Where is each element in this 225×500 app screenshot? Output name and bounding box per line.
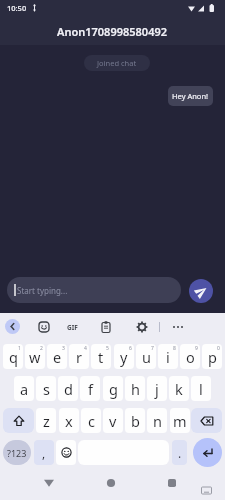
staticText: f: [88, 379, 93, 399]
button[interactable]: f: [80, 376, 100, 401]
staticText: z: [43, 411, 50, 431]
button[interactable]: k: [169, 376, 189, 401]
staticText: Anon1708998580492: [57, 24, 168, 39]
button[interactable]: q: [3, 344, 23, 369]
staticText: 2: [40, 345, 43, 352]
staticText: j: [155, 379, 159, 399]
staticText: 9: [195, 345, 198, 352]
staticText: 4: [84, 345, 87, 352]
button[interactable]: [104, 477, 118, 489]
button[interactable]: Start typing...: [7, 277, 181, 303]
button[interactable]: m: [170, 408, 190, 433]
button[interactable]: [200, 486, 213, 496]
staticText: r: [76, 347, 82, 367]
button[interactable]: o: [180, 344, 200, 369]
button[interactable]: r: [69, 344, 89, 369]
button[interactable]: [3, 408, 34, 433]
staticText: n: [153, 411, 162, 431]
button[interactable]: [189, 279, 213, 303]
button[interactable]: d: [58, 376, 78, 401]
staticText: 3: [62, 345, 65, 352]
staticText: v: [109, 411, 117, 431]
staticText: 6: [129, 345, 132, 352]
staticText: s: [43, 379, 50, 399]
button[interactable]: e: [47, 344, 67, 369]
button[interactable]: [171, 321, 185, 333]
staticText: d: [64, 379, 73, 399]
staticText: g: [109, 379, 118, 399]
staticText: l: [199, 379, 203, 399]
button[interactable]: z: [36, 408, 56, 433]
button[interactable]: t: [91, 344, 111, 369]
staticText: a: [20, 379, 29, 399]
staticText: 1: [18, 345, 21, 352]
staticText: 7: [151, 345, 154, 352]
button[interactable]: i: [158, 344, 178, 369]
button[interactable]: u: [136, 344, 156, 369]
button[interactable]: p: [202, 344, 222, 369]
button[interactable]: [191, 408, 222, 433]
button[interactable]: l: [191, 376, 211, 401]
staticText: x: [65, 411, 73, 431]
button[interactable]: [100, 321, 112, 333]
staticText: o: [186, 347, 195, 367]
staticText: h: [131, 379, 140, 399]
button[interactable]: ?123: [3, 440, 31, 465]
staticText: 10:50: [7, 3, 27, 13]
staticText: Start typing...: [17, 285, 68, 296]
staticText: .: [178, 445, 182, 461]
staticText: b: [131, 411, 140, 431]
button[interactable]: a: [14, 376, 34, 401]
button[interactable]: [38, 321, 50, 333]
button[interactable]: GIF: [64, 321, 80, 333]
staticText: u: [142, 347, 151, 367]
staticText: GIF: [67, 323, 78, 332]
button[interactable]: c: [81, 408, 101, 433]
button[interactable]: s: [36, 376, 56, 401]
staticText: 8: [173, 345, 176, 352]
staticText: q: [9, 347, 18, 367]
button[interactable]: b: [125, 408, 145, 433]
staticText: m: [173, 411, 187, 431]
staticText: w: [29, 347, 41, 367]
staticText: t: [98, 347, 104, 367]
button[interactable]: v: [103, 408, 123, 433]
button[interactable]: h: [125, 376, 145, 401]
button[interactable]: j: [147, 376, 167, 401]
staticText: e: [53, 347, 62, 367]
staticText: Hey Anon!: [172, 91, 209, 101]
button[interactable]: .: [172, 440, 187, 465]
button[interactable]: [56, 440, 76, 465]
staticText: y: [120, 347, 128, 367]
button[interactable]: [165, 477, 179, 489]
button[interactable]: [193, 438, 222, 467]
staticText: 5: [106, 345, 109, 352]
button[interactable]: [42, 477, 56, 489]
staticText: ,: [42, 445, 46, 461]
button[interactable]: y: [114, 344, 134, 369]
button[interactable]: n: [147, 408, 167, 433]
staticText: 0: [217, 345, 220, 352]
staticText: Joined chat: [97, 58, 137, 68]
button[interactable]: [5, 319, 20, 334]
staticText: ?123: [7, 447, 27, 459]
staticText: i: [166, 347, 170, 367]
button[interactable]: w: [25, 344, 45, 369]
button[interactable]: x: [59, 408, 79, 433]
staticText: c: [88, 411, 95, 431]
staticText: k: [175, 379, 183, 399]
button[interactable]: Anon1708998580492: [0, 17, 225, 45]
button[interactable]: [136, 321, 148, 333]
button[interactable]: ,: [34, 440, 54, 465]
button[interactable]: g: [103, 376, 123, 401]
staticText: p: [208, 347, 217, 367]
